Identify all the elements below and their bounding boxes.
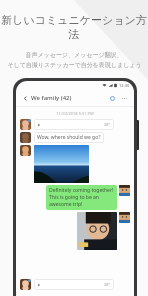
button[interactable]: Photo of ocean [34,145,89,183]
button[interactable]: More options [120,94,129,103]
staticText: Wow, where should we go? [37,134,101,141]
button[interactable]: Wow, where should we go? [34,132,104,143]
staticText: 新しいコミュニケーション方法 [0,13,148,41]
staticText: 28" [104,282,111,287]
staticText: 11/22/2018 5:31 PM [16,111,134,116]
staticText: 音声メッセージ、メッセージ翻訳、 [25,51,123,59]
button[interactable]: Definitely coming together! This is goin… [46,185,117,210]
staticText: We family (42) [31,94,72,102]
button[interactable]: Selfie photo [77,212,117,250]
staticText: 12:30 [119,83,130,88]
button[interactable]: Back [21,94,29,102]
staticText: Definitely coming together! This is goin… [49,187,114,208]
staticText: 28" [104,122,111,127]
button[interactable]: 28" [34,119,114,130]
button[interactable]: Search [108,94,117,103]
button[interactable]: 28" [34,279,114,290]
staticText: そして自撮りステッカーで自分を表現しましょう [7,61,142,69]
